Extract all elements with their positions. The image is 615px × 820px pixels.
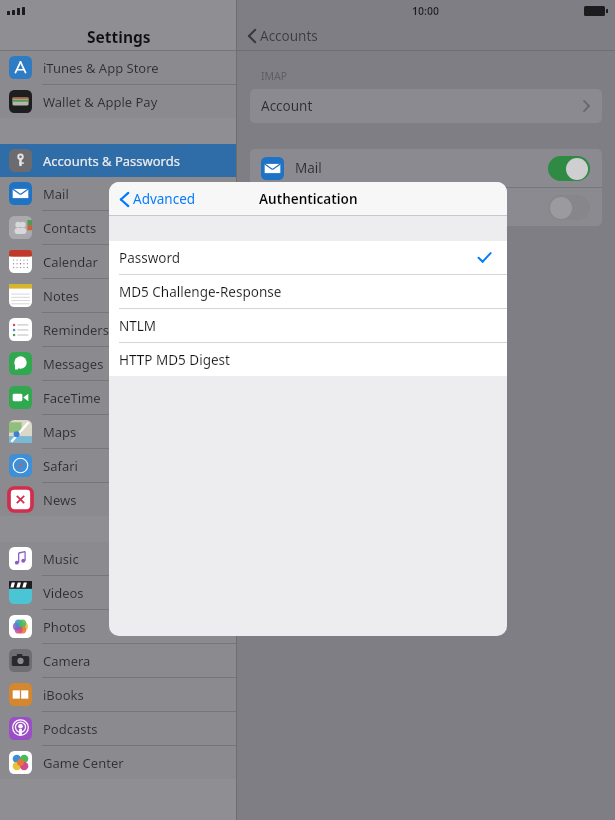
button[interactable]: Maps [0,415,237,448]
staticText: Reminders [43,321,109,339]
staticText: Authentication [259,190,358,208]
staticText: Mail [43,185,69,203]
button[interactable]: Password [109,241,507,274]
button[interactable]: Camera [0,644,237,677]
staticText: News [43,491,77,509]
staticText: MD5 Challenge-Response [119,283,282,301]
staticText: FaceTime [43,389,101,407]
staticText: Music [43,550,79,568]
staticText: Settings [87,26,151,47]
staticText: 10:00 [412,4,439,18]
staticText: Calendar [43,253,98,271]
staticText: Notes [295,198,333,216]
button[interactable]: Podcasts [0,712,237,745]
staticText: Videos [43,584,84,602]
staticText: Camera [43,652,91,670]
button[interactable]: Safari [0,449,237,482]
staticText: Accounts [260,27,318,45]
button[interactable]: Notes [250,188,602,226]
button[interactable]: Reminders [0,313,237,346]
button[interactable]: Notes [0,279,237,312]
staticText: Password [119,249,181,267]
button[interactable]: Messages [0,347,237,380]
button[interactable]: NTLM [109,309,507,342]
button[interactable]: Wallet & Apple Pay [0,85,237,118]
button[interactable]: Photos [0,610,237,643]
staticText: Photos [43,618,86,636]
staticText: iBooks [43,686,84,704]
staticText: NTLM [119,317,157,335]
button[interactable]: Advanced [117,186,199,212]
button[interactable]: iTunes & App Store [0,51,237,84]
button[interactable]: Mail [0,177,237,210]
staticText: Game Center [43,754,124,772]
button[interactable]: Mail on [548,156,590,181]
button[interactable]: FaceTime [0,381,237,414]
button[interactable]: Contacts [0,211,237,244]
button[interactable]: Accounts & Passwords [0,144,237,177]
staticText: Maps [43,423,77,441]
staticText: Podcasts [43,720,98,738]
button[interactable]: Music [0,542,237,575]
staticText: IMAP [261,69,288,83]
staticText: Safari [43,457,78,475]
button[interactable]: News [0,483,237,516]
staticText: Accounts & Passwords [43,152,180,170]
staticText: Account [261,97,313,115]
button[interactable]: Account [250,89,602,123]
button[interactable]: iBooks [0,678,237,711]
staticText: Advanced [133,190,196,208]
button[interactable]: Calendar [0,245,237,278]
staticText: Mail [295,159,322,177]
staticText: HTTP MD5 Digest [119,351,230,369]
button[interactable]: Accounts [245,24,321,48]
button[interactable]: Videos [0,576,237,609]
button[interactable]: HTTP MD5 Digest [109,343,507,376]
button[interactable]: Notes off [548,195,590,220]
staticText: iTunes & App Store [43,59,159,77]
button[interactable]: Game Center [0,746,237,779]
staticText: Wallet & Apple Pay [43,93,158,111]
button[interactable]: Mail [250,149,602,187]
button[interactable]: MD5 Challenge-Response [109,275,507,308]
staticText: Contacts [43,219,97,237]
staticText: Messages [43,355,104,373]
staticText: Notes [43,287,79,305]
